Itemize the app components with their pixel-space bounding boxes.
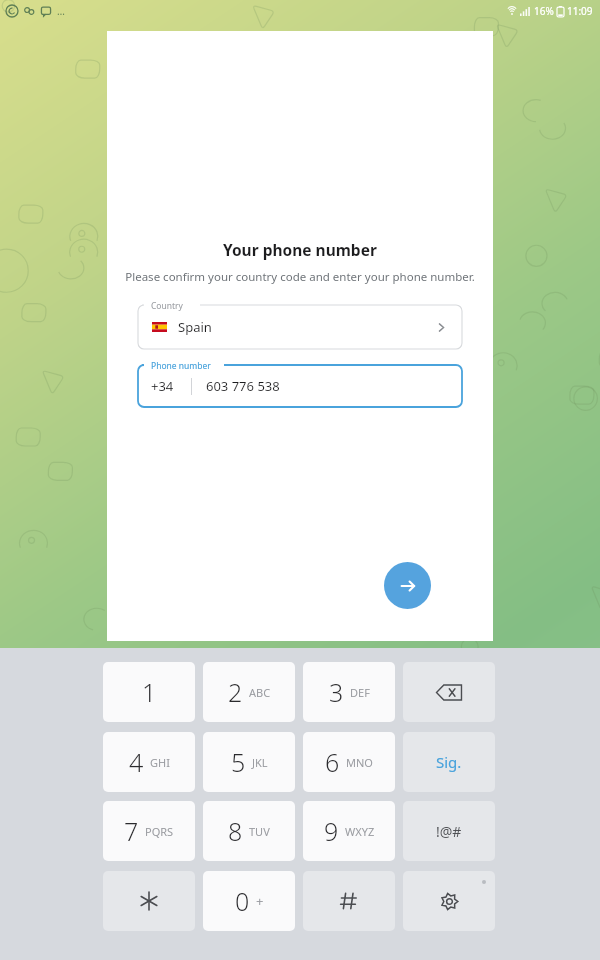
staticText: … bbox=[57, 4, 65, 18]
button[interactable]: 6 bbox=[303, 732, 395, 792]
staticText: 2 bbox=[228, 675, 243, 709]
staticText: MNO bbox=[346, 755, 373, 770]
button[interactable]: 0 bbox=[203, 871, 295, 931]
staticText: 7 bbox=[124, 814, 139, 848]
button[interactable]: 9 bbox=[303, 801, 395, 861]
staticText: DEF bbox=[350, 685, 370, 700]
button[interactable]: 5 bbox=[203, 732, 295, 792]
staticText: 6 bbox=[325, 745, 340, 779]
staticText: Sig. bbox=[436, 752, 462, 772]
button[interactable]: 2 bbox=[203, 662, 295, 722]
staticText: Spain bbox=[178, 318, 212, 336]
staticText: 3 bbox=[329, 675, 344, 709]
staticText: + bbox=[256, 892, 264, 910]
staticText: +34 bbox=[151, 377, 174, 395]
staticText: GHI bbox=[150, 755, 170, 770]
staticText: 603 776 538 bbox=[206, 377, 280, 395]
staticText: Country bbox=[151, 300, 183, 312]
staticText: PQRS bbox=[145, 824, 174, 839]
staticText: 0 bbox=[235, 884, 250, 918]
button[interactable]: 3 bbox=[303, 662, 395, 722]
button[interactable]: Sig. bbox=[403, 732, 495, 792]
staticText: 9 bbox=[324, 814, 339, 848]
staticText: ABC bbox=[249, 685, 271, 700]
button[interactable]: Next bbox=[384, 562, 431, 609]
staticText: JKL bbox=[252, 755, 268, 770]
button[interactable]: !@# bbox=[403, 801, 495, 861]
button[interactable]: 8 bbox=[203, 801, 295, 861]
staticText: Phone number bbox=[151, 360, 211, 372]
staticText: 5 bbox=[231, 745, 246, 779]
staticText: 1 bbox=[142, 675, 157, 709]
button[interactable]: 1 bbox=[103, 662, 195, 722]
staticText: !@# bbox=[436, 822, 462, 841]
button[interactable]: 7 bbox=[103, 801, 195, 861]
button[interactable]: Keyboard settings bbox=[403, 871, 495, 931]
staticText: 8 bbox=[228, 814, 243, 848]
button[interactable]: Backspace bbox=[403, 662, 495, 722]
staticText: Your phone number bbox=[223, 239, 377, 260]
staticText: WXYZ bbox=[345, 824, 375, 839]
staticText: 4 bbox=[129, 745, 144, 779]
button[interactable]: * bbox=[103, 871, 195, 931]
staticText: 11:09 bbox=[567, 4, 593, 18]
button[interactable]: Country bbox=[138, 305, 462, 349]
button[interactable]: # bbox=[303, 871, 395, 931]
staticText: 16% bbox=[534, 4, 554, 18]
button[interactable]: 4 bbox=[103, 732, 195, 792]
button[interactable]: Phone number bbox=[138, 365, 462, 407]
staticText: Please confirm your country code and ent… bbox=[125, 269, 475, 285]
staticText: TUV bbox=[249, 824, 270, 839]
